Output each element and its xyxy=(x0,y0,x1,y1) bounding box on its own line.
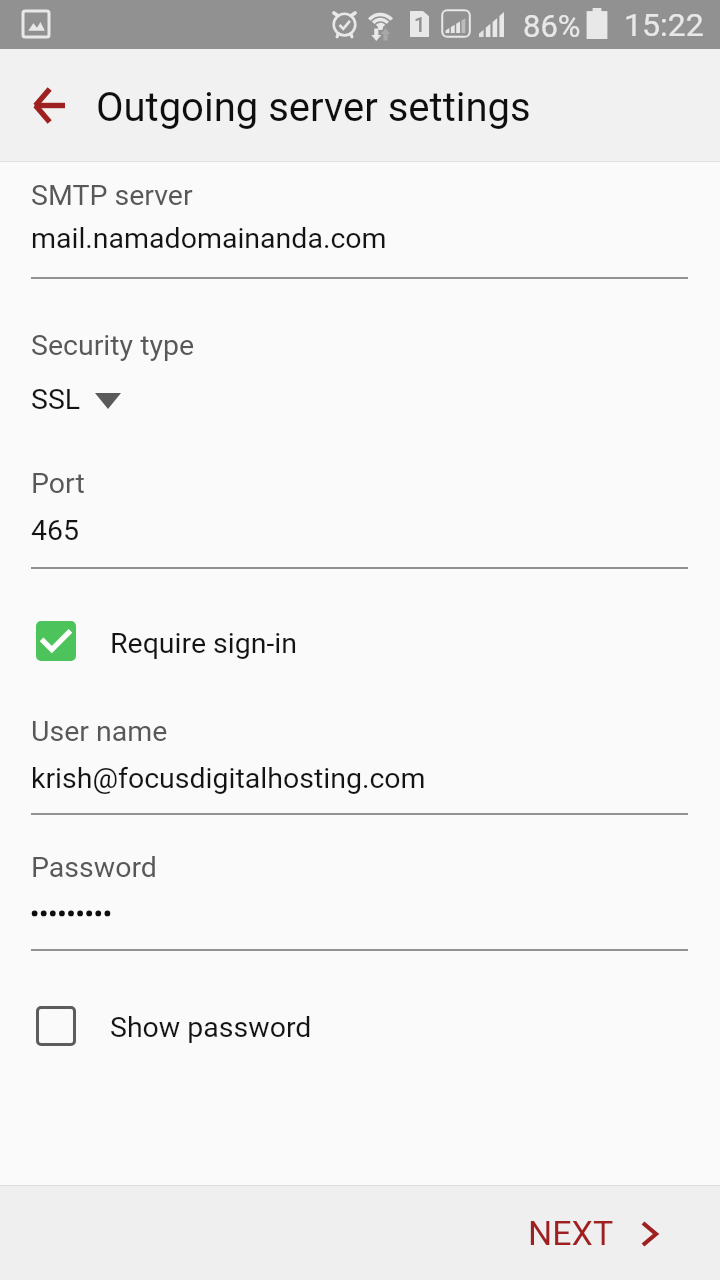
button[interactable]: Require sign-in xyxy=(20,612,350,672)
staticText: Show password xyxy=(110,1011,312,1044)
staticText: Require sign-in xyxy=(110,627,298,660)
staticText: 1 xyxy=(414,13,426,36)
staticText: SMTP server xyxy=(31,179,193,212)
staticText: 86% xyxy=(523,8,581,44)
staticText: krish@focusdigitalhosting.com xyxy=(31,762,426,795)
staticText: SSL xyxy=(31,383,81,416)
button[interactable]: SSL xyxy=(20,376,140,422)
button[interactable]: Show password xyxy=(20,996,360,1056)
staticText: mail.namadomainanda.com xyxy=(31,222,387,255)
staticText: 465 xyxy=(31,514,80,547)
staticText: Password xyxy=(31,851,157,884)
staticText: User name xyxy=(31,715,168,748)
staticText: NEXT xyxy=(528,1213,614,1253)
staticText: Port xyxy=(31,467,85,500)
staticText: 15:22 xyxy=(624,6,704,44)
button[interactable]: Navigate up xyxy=(10,59,88,151)
staticText: Outgoing server settings xyxy=(96,84,531,131)
button[interactable]: NEXT xyxy=(505,1195,695,1270)
staticText: Security type xyxy=(31,329,195,362)
